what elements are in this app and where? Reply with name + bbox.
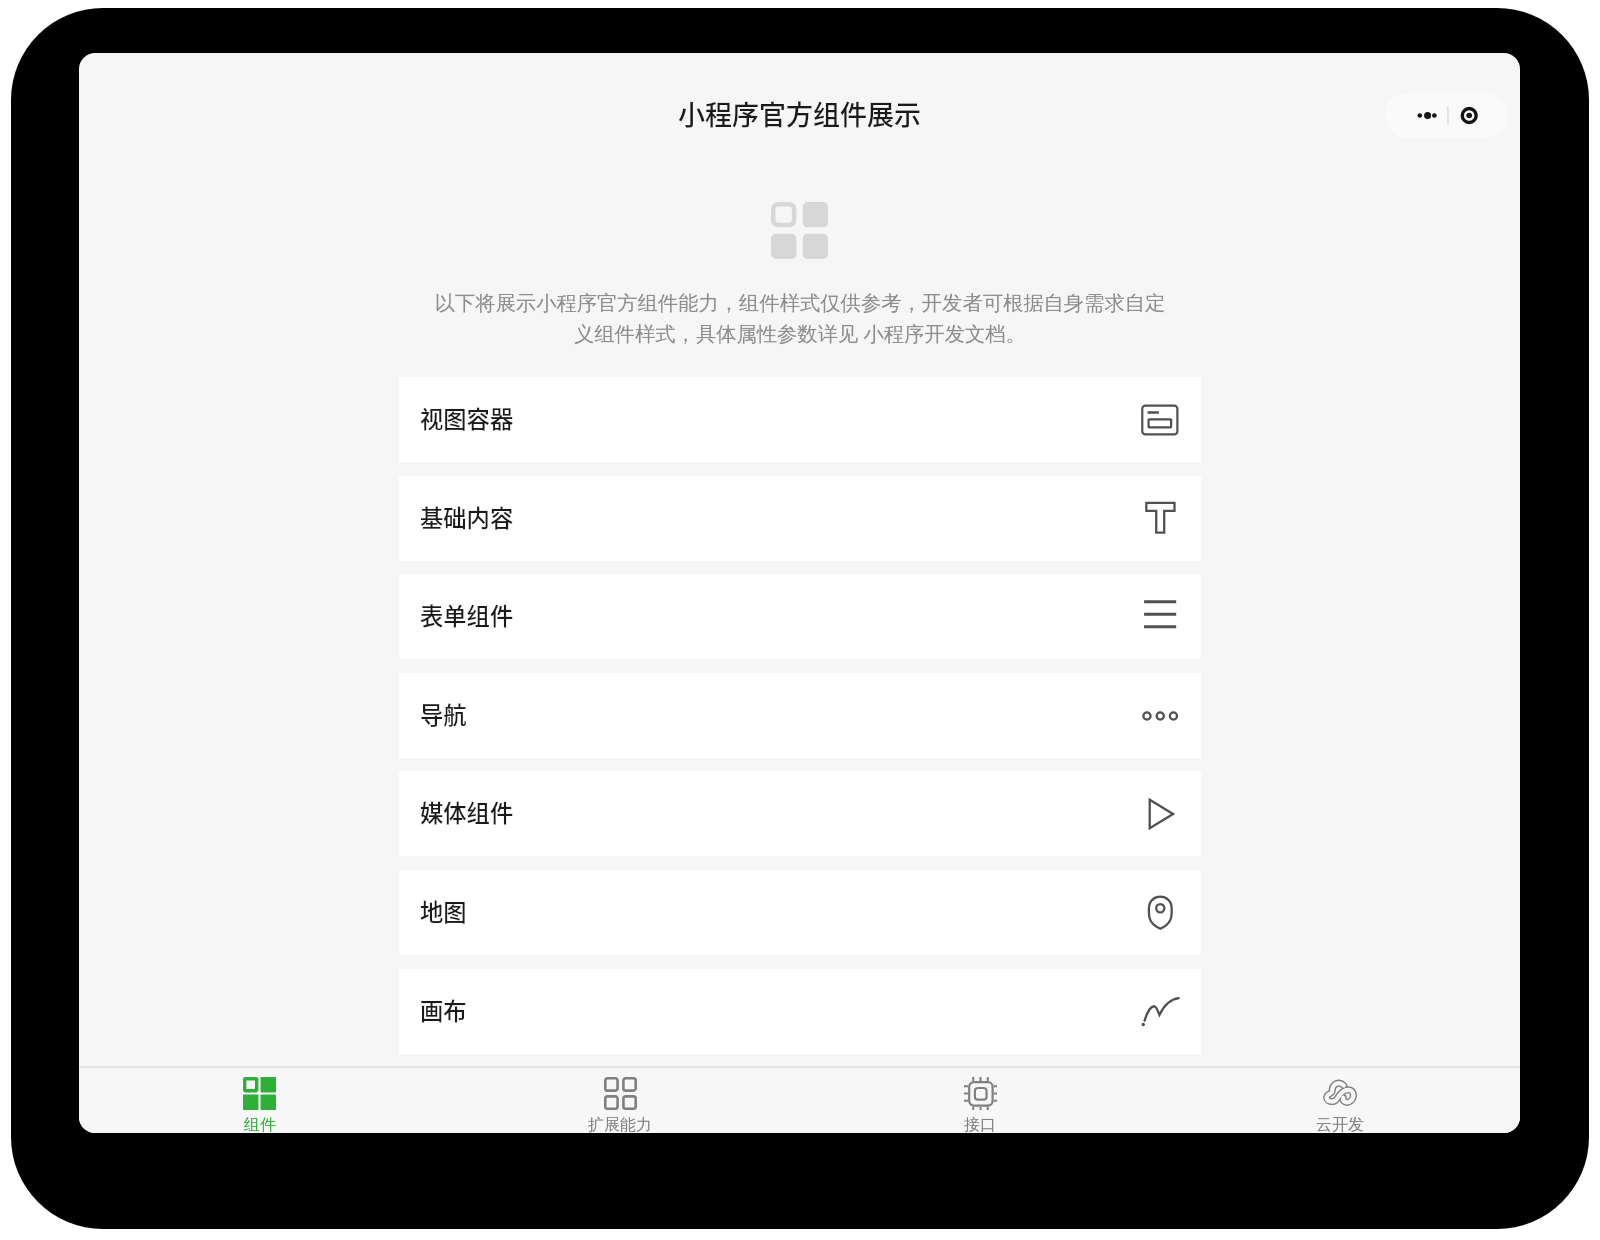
button[interactable]: More options and close mini program — [1385, 93, 1507, 138]
staticText: 媒体组件 — [420, 795, 514, 829]
button[interactable]: 表单组件 — [399, 574, 1201, 659]
button[interactable]: 扩展能力 — [440, 1068, 800, 1133]
button[interactable]: 导航 — [399, 673, 1201, 758]
button[interactable]: 画布 — [399, 969, 1201, 1054]
button[interactable]: 云开发 — [1160, 1068, 1520, 1133]
button[interactable]: 媒体组件 — [399, 771, 1201, 856]
button[interactable]: 基础内容 — [399, 476, 1201, 561]
staticText: 地图 — [420, 894, 467, 928]
button[interactable]: 地图 — [399, 870, 1201, 955]
staticText: 以下将展示小程序官方组件能力，组件样式仅供参考，开发者可根据自身需求自定义组件样… — [430, 290, 1170, 347]
staticText: 小程序官方组件展示 — [79, 94, 1520, 133]
button[interactable]: 视图容器 — [399, 377, 1201, 462]
staticText: 视图容器 — [420, 401, 514, 435]
button[interactable]: 接口 — [800, 1068, 1160, 1133]
staticText: 基础内容 — [420, 500, 514, 534]
staticText: 接口 — [964, 1115, 996, 1133]
staticText: 导航 — [420, 697, 467, 731]
staticText: 表单组件 — [420, 598, 514, 632]
staticText: 组件 — [244, 1115, 276, 1133]
button[interactable]: 组件 — [79, 1068, 440, 1133]
staticText: 画布 — [420, 993, 467, 1027]
staticText: 云开发 — [1316, 1115, 1364, 1133]
staticText: 扩展能力 — [588, 1115, 652, 1133]
